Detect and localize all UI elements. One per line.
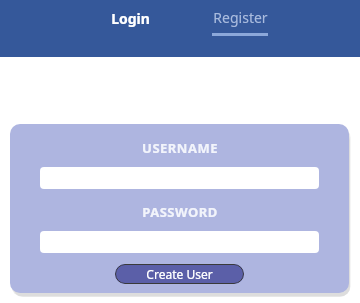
button[interactable]: Create User — [115, 264, 244, 284]
button[interactable]: Login — [100, 0, 160, 40]
staticText: Create User — [146, 266, 213, 282]
button[interactable]: Register — [203, 0, 277, 40]
staticText: Login — [111, 9, 150, 28]
staticText: USERNAME — [142, 139, 218, 157]
staticText: Register — [213, 8, 268, 27]
staticText: PASSWORD — [142, 203, 218, 221]
